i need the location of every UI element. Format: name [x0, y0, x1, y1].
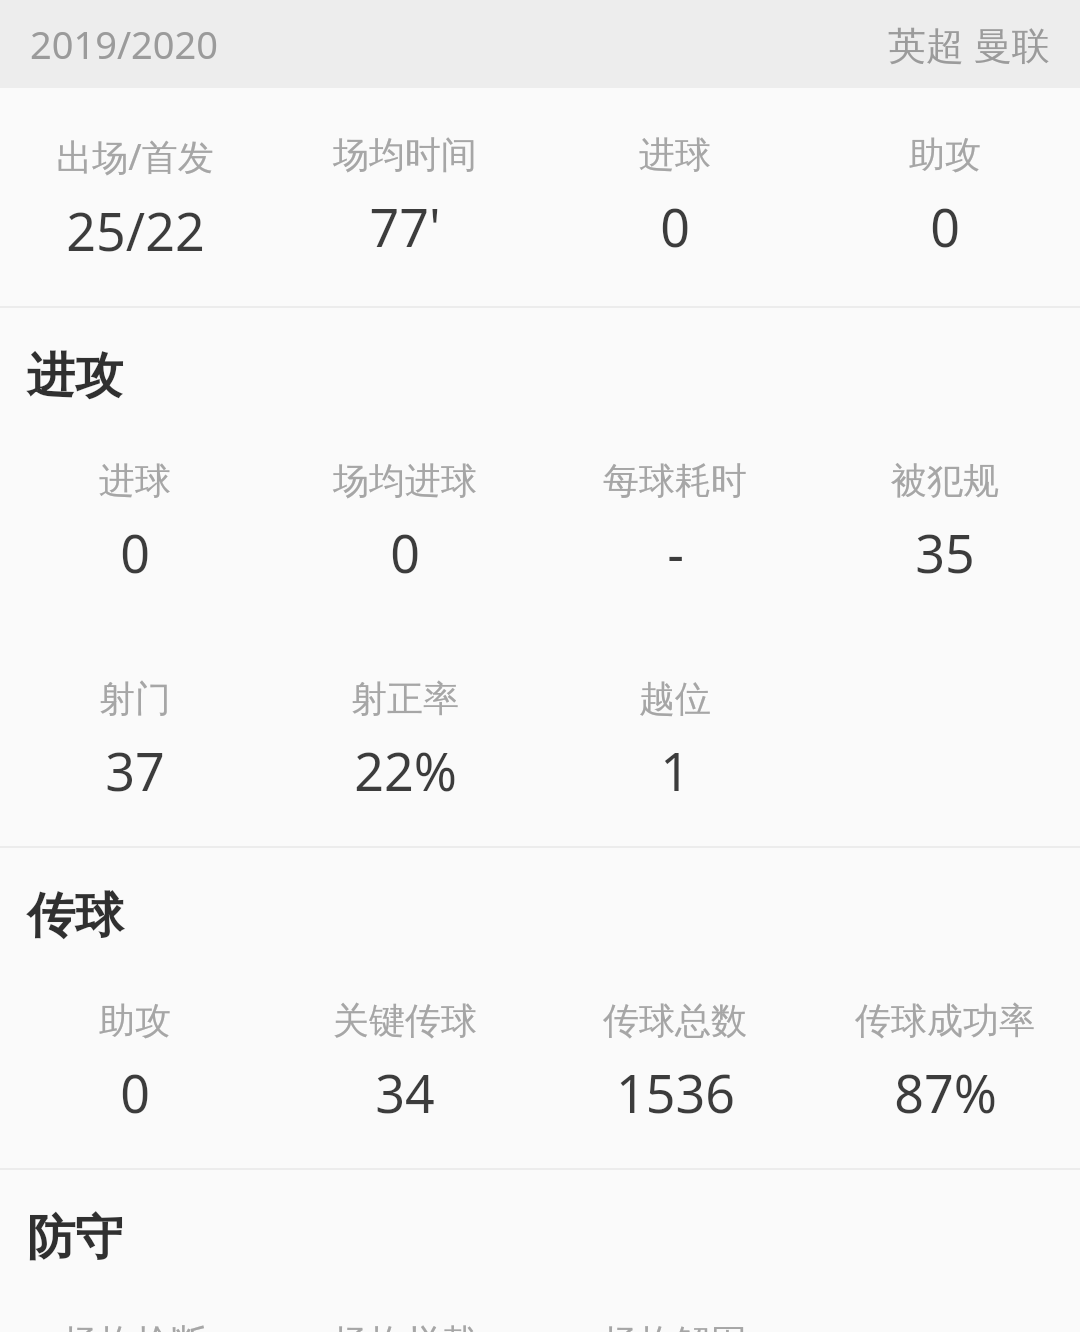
staticText: 37: [105, 735, 165, 806]
staticText: 被犯规: [891, 458, 999, 503]
button[interactable]: 射正率: [270, 676, 540, 806]
staticText: 87%: [894, 1057, 997, 1128]
button[interactable]: 助攻: [810, 132, 1080, 262]
staticText: 2019/2020: [30, 18, 219, 70]
staticText: 77': [369, 191, 441, 262]
staticText: 1: [660, 735, 690, 806]
button[interactable]: 每球耗时: [540, 458, 810, 588]
button[interactable]: 进球: [0, 458, 270, 588]
staticText: 助攻: [909, 132, 981, 177]
staticText: 25/22: [66, 195, 205, 266]
button[interactable]: 传球总数: [540, 998, 810, 1128]
staticText: 每球耗时: [603, 458, 747, 503]
staticText: 射正率: [351, 676, 459, 721]
button[interactable]: 关键传球: [270, 998, 540, 1128]
staticText: 传球: [27, 886, 123, 946]
button[interactable]: 射门: [0, 676, 270, 806]
staticText: 出场/首发: [56, 132, 214, 181]
staticText: 35: [915, 517, 975, 588]
staticText: 进球: [639, 132, 711, 177]
button[interactable]: 传球成功率: [810, 998, 1080, 1128]
staticText: 助攻: [99, 998, 171, 1043]
staticText: 关键传球: [333, 998, 477, 1043]
button[interactable]: 场均拦截: [270, 1320, 540, 1332]
button[interactable]: 场均抢断: [0, 1320, 270, 1332]
button[interactable]: 被犯规: [810, 458, 1080, 588]
button[interactable]: 出场/首发: [0, 132, 270, 266]
staticText: 0: [120, 517, 150, 588]
staticText: 0: [660, 191, 690, 262]
button[interactable]: 越位: [540, 676, 810, 806]
staticText: 场均时间: [333, 132, 477, 177]
staticText: 进球: [99, 458, 171, 503]
button[interactable]: 助攻: [0, 998, 270, 1128]
staticText: 防守: [27, 1208, 123, 1268]
staticText: 34: [375, 1057, 435, 1128]
staticText: 英超 曼联: [888, 18, 1050, 70]
button[interactable]: 场均进球: [270, 458, 540, 588]
staticText: 0: [120, 1057, 150, 1128]
staticText: 场均进球: [333, 458, 477, 503]
button[interactable]: 场均时间: [270, 132, 540, 262]
staticText: 场均抢断: [63, 1320, 207, 1332]
staticText: 0: [930, 191, 960, 262]
button[interactable]: 场均解围: [540, 1320, 810, 1332]
button[interactable]: 进球: [540, 132, 810, 262]
button[interactable]: 2019/2020: [0, 0, 1080, 88]
staticText: 传球总数: [603, 998, 747, 1043]
staticText: 场均解围: [603, 1320, 747, 1332]
staticText: 场均拦截: [333, 1320, 477, 1332]
staticText: 射门: [99, 676, 171, 721]
staticText: 1536: [616, 1057, 735, 1128]
staticText: -: [667, 517, 684, 588]
staticText: 进攻: [27, 346, 123, 406]
staticText: 传球成功率: [855, 998, 1035, 1043]
staticText: 越位: [639, 676, 711, 721]
staticText: 0: [390, 517, 420, 588]
staticText: 22%: [354, 735, 457, 806]
